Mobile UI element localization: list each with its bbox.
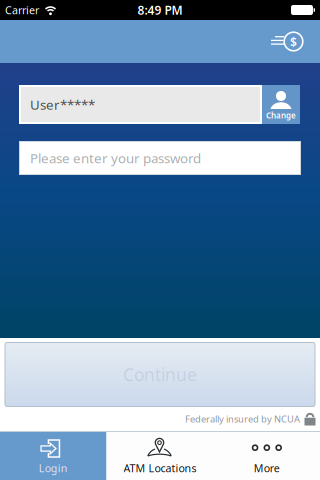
staticText: $ bbox=[290, 34, 297, 50]
staticText: Change bbox=[266, 110, 296, 121]
staticText: ATM Locations bbox=[123, 461, 196, 475]
staticText: More bbox=[254, 461, 280, 475]
button[interactable]: Change user bbox=[262, 85, 300, 124]
button[interactable]: Password bbox=[19, 141, 301, 175]
button[interactable]: Login tab bbox=[0, 432, 106, 480]
staticText: Continue bbox=[123, 363, 197, 386]
staticText: User***** bbox=[30, 96, 95, 113]
staticText: 8:49 PM bbox=[137, 2, 182, 18]
button[interactable]: Username bbox=[19, 85, 262, 124]
button[interactable]: More tab bbox=[213, 432, 320, 480]
staticText: Login bbox=[39, 461, 68, 475]
button[interactable]: ATM Locations tab bbox=[106, 432, 213, 480]
staticText: Please enter your password bbox=[30, 149, 201, 167]
button[interactable]: Quick Balance bbox=[263, 23, 307, 59]
staticText: Carrier bbox=[5, 3, 39, 17]
staticText: Federally insured by NCUA bbox=[185, 413, 300, 425]
button[interactable]: Continue bbox=[5, 342, 315, 406]
